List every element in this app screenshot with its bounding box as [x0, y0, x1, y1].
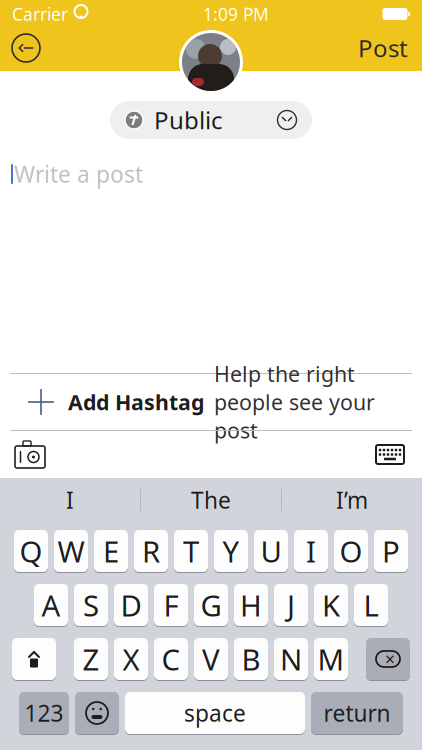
staticText: F [163, 585, 178, 624]
staticText: I’m [336, 485, 368, 515]
staticText: return [323, 698, 390, 728]
staticText: O [339, 531, 362, 570]
staticText: X [122, 639, 139, 678]
staticText: L [363, 585, 378, 624]
button[interactable]: M [314, 637, 348, 681]
staticText: I [306, 531, 316, 570]
staticText: Q [19, 531, 42, 570]
staticText: B [241, 639, 260, 678]
button[interactable]: A [34, 583, 68, 627]
button[interactable]: N [274, 637, 308, 681]
staticText: 1:09 PM [203, 2, 269, 25]
button[interactable]: R [134, 529, 168, 573]
button[interactable]: E [94, 529, 128, 573]
staticText: E [103, 531, 119, 570]
staticText: Add Hashtag [68, 388, 204, 416]
button[interactable]: return [311, 691, 403, 735]
button[interactable]: Z [74, 637, 108, 681]
button[interactable]: V [194, 637, 228, 681]
staticText: Post [358, 32, 408, 64]
button[interactable]: W [54, 529, 88, 573]
staticText: space [184, 698, 246, 728]
button[interactable]: I’m [282, 479, 422, 521]
button[interactable]: B [234, 637, 268, 681]
button[interactable]: U [254, 529, 288, 573]
button[interactable]: K [314, 583, 348, 627]
button[interactable]: The [141, 479, 281, 521]
button[interactable]: Emoji [75, 691, 119, 735]
staticText: Carrier [12, 2, 68, 25]
button[interactable]: Post [344, 26, 422, 70]
staticText: 123 [24, 698, 63, 728]
button[interactable]: Add Hashtag [0, 374, 422, 430]
button[interactable]: Shift [12, 637, 56, 681]
staticText: N [280, 639, 302, 678]
button[interactable]: F [154, 583, 188, 627]
staticText: Z [82, 639, 99, 678]
button[interactable]: Add photo [8, 432, 52, 476]
staticText: I [66, 485, 74, 515]
button[interactable]: Public [110, 101, 312, 139]
button[interactable]: J [274, 583, 308, 627]
staticText: Help the right people see your post [214, 359, 375, 444]
staticText: J [287, 585, 295, 624]
button[interactable]: G [194, 583, 228, 627]
button[interactable]: O [334, 529, 368, 573]
button[interactable]: C [154, 637, 188, 681]
staticText: S [83, 585, 99, 624]
staticText: R [142, 531, 160, 570]
staticText: C [161, 639, 180, 678]
button[interactable]: S [74, 583, 108, 627]
staticText: U [260, 531, 281, 570]
staticText: D [120, 585, 141, 624]
button[interactable]: Y [214, 529, 248, 573]
staticText: A [41, 585, 60, 624]
staticText: G [200, 585, 221, 624]
staticText: Public [154, 104, 223, 136]
staticText: Y [222, 531, 239, 570]
staticText: V [202, 639, 220, 678]
staticText: M [317, 639, 344, 678]
button[interactable]: L [354, 583, 388, 627]
button[interactable]: I [294, 529, 328, 573]
button[interactable]: Delete [366, 637, 410, 681]
staticText: K [322, 585, 340, 624]
button[interactable]: X [114, 637, 148, 681]
staticText: P [382, 531, 400, 570]
staticText: W [57, 531, 84, 570]
staticText: T [183, 531, 199, 570]
staticText: × [385, 647, 395, 670]
button[interactable]: I [0, 479, 140, 521]
staticText: H [240, 585, 262, 624]
button[interactable]: Back [4, 26, 48, 70]
button[interactable]: T [174, 529, 208, 573]
staticText: The [191, 485, 231, 515]
button[interactable]: H [234, 583, 268, 627]
button[interactable]: 123 [19, 691, 69, 735]
button[interactable]: D [114, 583, 148, 627]
button[interactable]: Keyboard [368, 432, 412, 476]
button[interactable]: space [125, 691, 305, 735]
button[interactable]: Q [14, 529, 48, 573]
button[interactable]: P [374, 529, 408, 573]
staticText: Write a post [14, 159, 143, 189]
